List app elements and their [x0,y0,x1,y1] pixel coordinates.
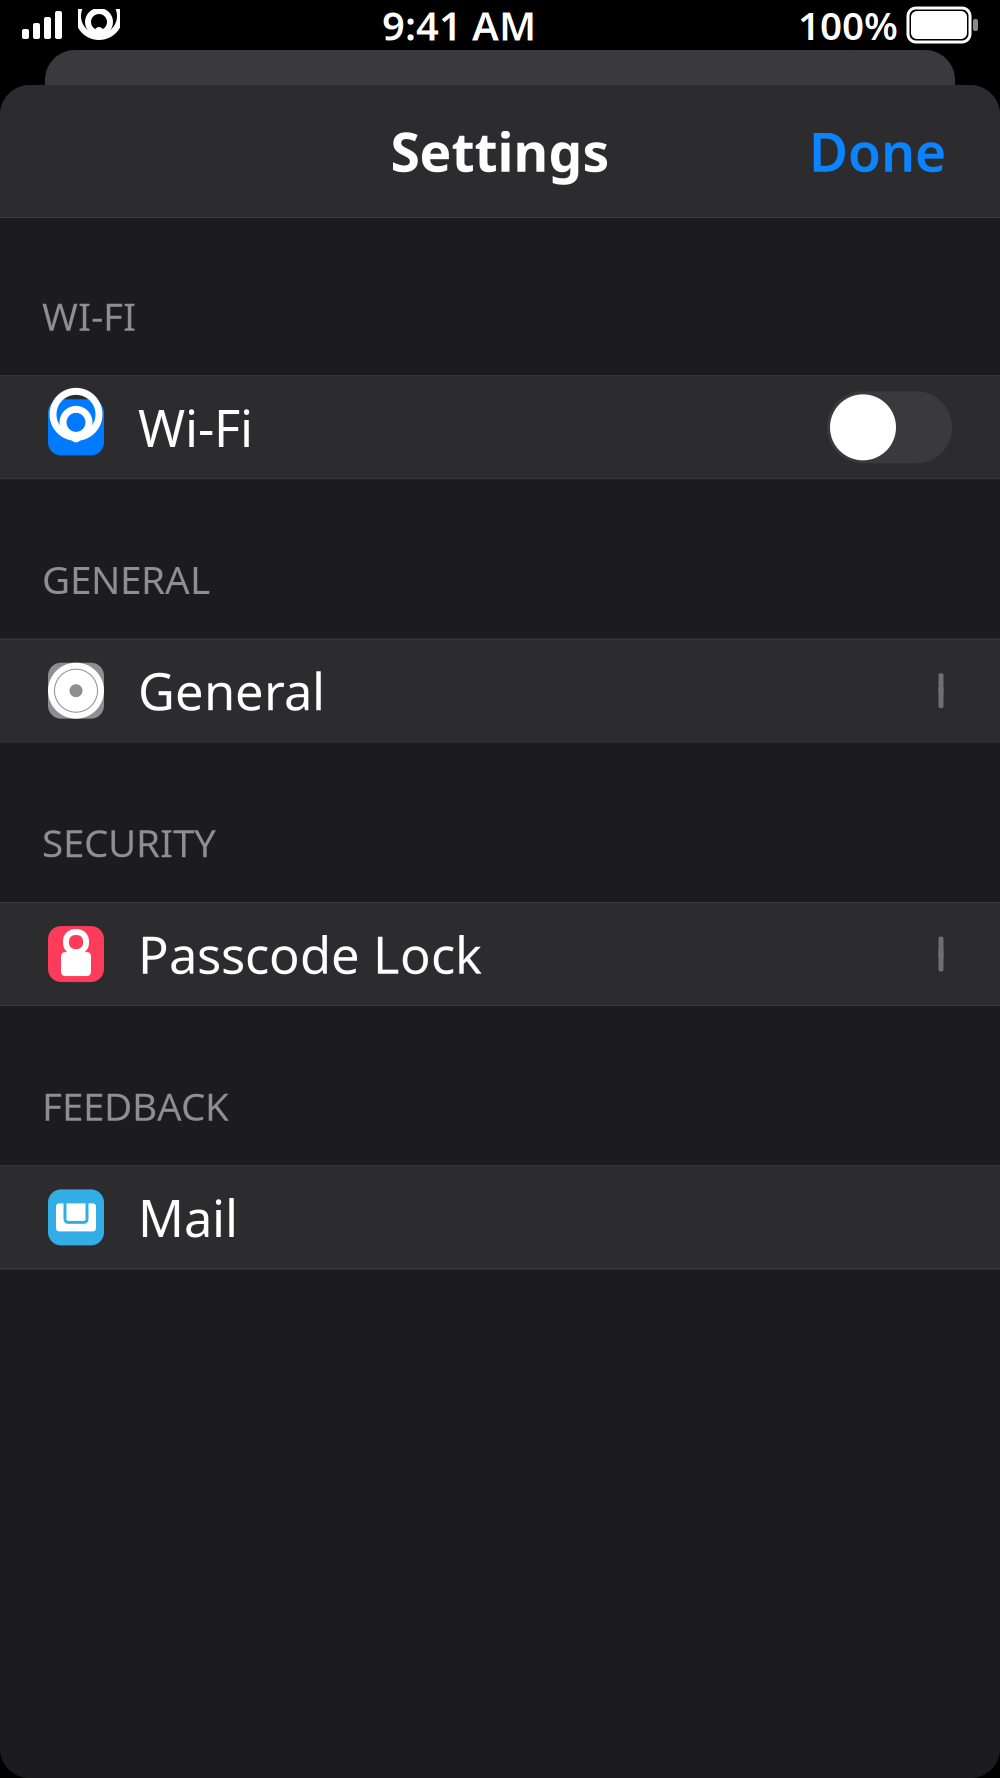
staticText: Wi-Fi [138,394,253,461]
staticText: WI-FI [42,290,136,341]
button[interactable]: General [0,639,1000,743]
staticText: 100% [798,0,898,51]
staticText: Mail [138,1184,238,1251]
staticText: SECURITY [42,817,216,868]
staticText: FEEDBACK [42,1080,229,1131]
button[interactable]: Wi-Fi [0,375,1000,479]
button[interactable]: Wi-Fi toggle [827,391,952,463]
button[interactable]: Passcode Lock [0,902,1000,1006]
staticText: Settings [390,116,609,186]
button[interactable]: Mail [0,1165,1000,1269]
staticText: 9:41 AM [382,0,536,51]
staticText: Passcode Lock [138,920,482,988]
staticText: General [138,657,325,724]
staticText: Done [809,116,946,186]
staticText: GENERAL [42,553,210,605]
button[interactable]: Done [785,100,970,202]
